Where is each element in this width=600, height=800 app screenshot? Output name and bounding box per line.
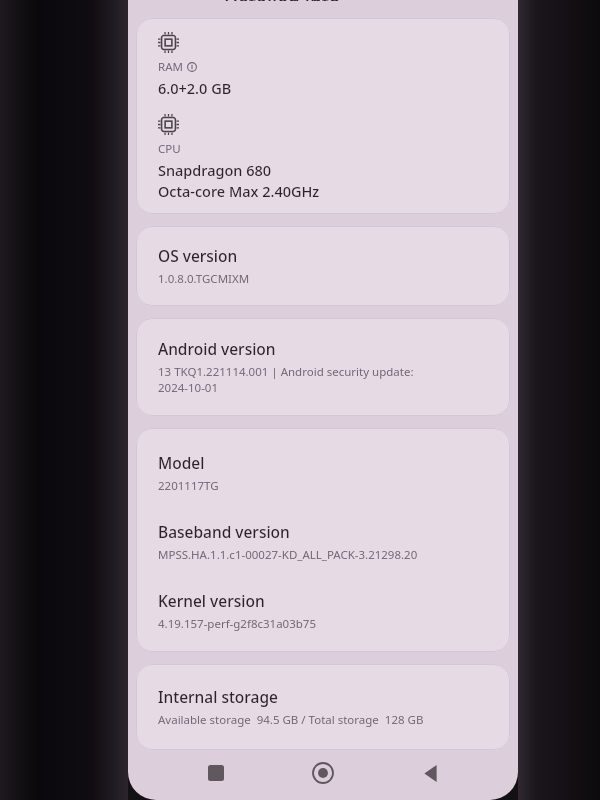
staticText: 1.0.8.0.TGCMIXM	[158, 271, 250, 287]
button[interactable]: OS version	[136, 226, 510, 306]
staticText: 2201117TG	[158, 478, 219, 494]
staticText: Snapdragon 680	[158, 160, 272, 180]
button[interactable]: Back	[411, 753, 451, 793]
button[interactable]: RAM	[136, 18, 510, 214]
staticText: Kernel version	[158, 590, 265, 611]
staticText: Android version	[158, 338, 276, 359]
staticText: Available storage 94.5 GB / Total storag…	[158, 712, 424, 728]
staticText: Octa-core Max 2.40GHz	[158, 181, 320, 201]
staticText: OS version	[158, 245, 238, 266]
button[interactable]: Back	[128, 0, 518, 11]
staticText: Baseband version	[158, 521, 290, 542]
staticText: 2024-10-01	[158, 380, 219, 396]
button[interactable]: Model	[136, 428, 510, 652]
staticText: Detailed info	[224, 0, 341, 1]
staticText: RAM	[158, 59, 183, 75]
button[interactable]: Android version	[136, 318, 510, 416]
staticText: 4.19.157-perf-g2f8c31a03b75	[158, 616, 316, 632]
staticText: 13 TKQ1.221114.001 | Android security up…	[158, 364, 414, 380]
button[interactable]: Internal storage	[136, 664, 510, 750]
staticText: Model	[158, 452, 205, 473]
staticText: 6.0+2.0 GB	[158, 78, 232, 98]
staticText: MPSS.HA.1.1.c1-00027-KD_ALL_PACK-3.21298…	[158, 547, 418, 563]
button[interactable]: Home	[303, 753, 343, 793]
staticText: Internal storage	[158, 686, 278, 707]
staticText: CPU	[158, 141, 181, 157]
button[interactable]: Recents	[196, 753, 236, 793]
